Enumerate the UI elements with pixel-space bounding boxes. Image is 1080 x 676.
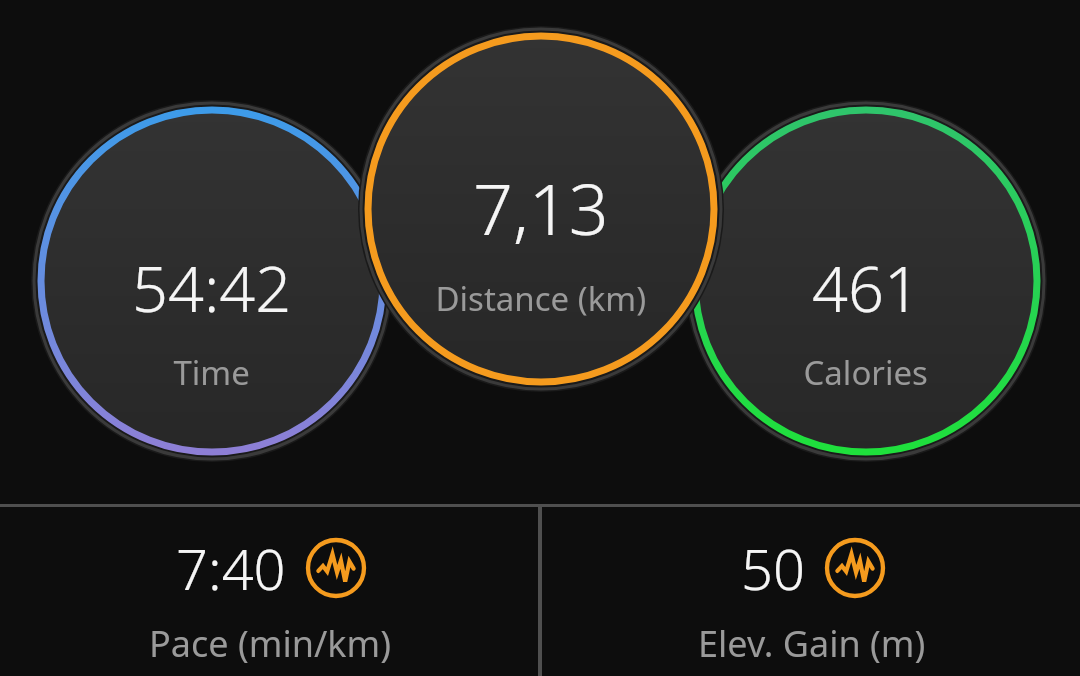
button[interactable]: Workout summary [0,0,1080,676]
